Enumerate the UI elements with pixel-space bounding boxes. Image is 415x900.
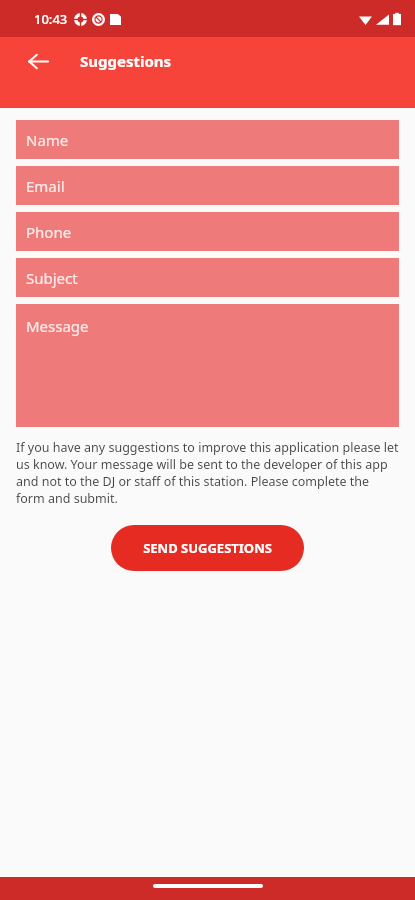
button[interactable]: SEND SUGGESTIONS — [111, 525, 304, 571]
button[interactable]: Subject — [16, 258, 399, 297]
staticText: Subject — [26, 268, 78, 288]
staticText: Email — [26, 176, 65, 196]
staticText: Message — [26, 316, 89, 336]
staticText: Name — [26, 130, 69, 150]
button[interactable]: Email — [16, 166, 399, 205]
button[interactable]: Phone — [16, 212, 399, 251]
button[interactable]: Message — [16, 304, 399, 427]
staticText: SEND SUGGESTIONS — [143, 539, 272, 557]
staticText: 10:43 — [34, 10, 68, 28]
staticText: Suggestions — [80, 51, 172, 71]
button[interactable]: Back — [14, 37, 62, 85]
staticText: If you have any suggestions to improve t… — [16, 439, 399, 507]
staticText: Phone — [26, 222, 72, 242]
button[interactable]: Name — [16, 120, 399, 159]
